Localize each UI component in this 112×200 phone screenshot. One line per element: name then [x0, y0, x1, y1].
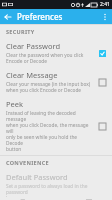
staticText: Clear the password when you click Encode…: [6, 52, 84, 64]
button[interactable]: Clear Password checkbox: [96, 47, 108, 59]
button[interactable]: Peek: [0, 96, 112, 155]
staticText: Default Password: [6, 172, 68, 182]
staticText: Preferences: [17, 11, 63, 22]
button[interactable]: More options: [98, 10, 112, 24]
staticText: 2:41: [100, 1, 110, 8]
staticText: Peek: [6, 99, 24, 109]
button[interactable]: Navigate up: [0, 9, 15, 24]
button[interactable]: Clear Message checkbox: [96, 76, 108, 88]
staticText: Clear Password: [6, 41, 61, 51]
button[interactable]: Default Password: [0, 169, 112, 200]
button[interactable]: Peek checkbox: [96, 120, 108, 132]
button[interactable]: Clear Password: [0, 38, 112, 67]
staticText: SECURITY: [6, 28, 35, 35]
staticText: Clear Message: [6, 70, 58, 80]
staticText: Clear your message (in the input box) wh…: [6, 81, 91, 93]
button[interactable]: Clear Message: [0, 67, 112, 96]
staticText: Instead of leaving the decoded message w…: [6, 110, 93, 152]
staticText: Set a password to always load in the pas…: [6, 183, 108, 197]
staticText: CONVENIENCE: [6, 159, 49, 166]
